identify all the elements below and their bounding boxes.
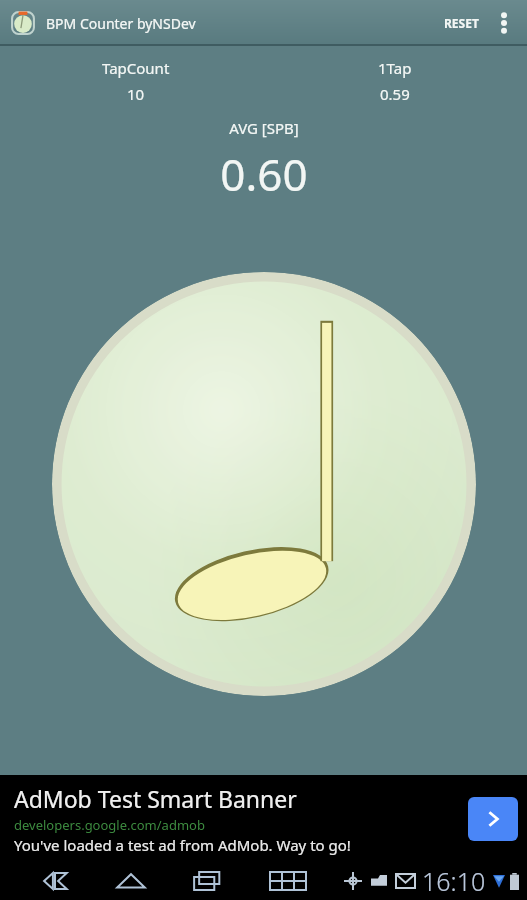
staticText: 1Tap (378, 58, 412, 78)
staticText: 10 (127, 84, 145, 104)
staticText: AVG [SPB] (229, 118, 299, 138)
staticText: 0.60 (220, 144, 308, 204)
staticText: You've loaded a test ad from AdMob. Way … (14, 835, 351, 855)
button[interactable]: AdMob Test Smart Banner (0, 775, 527, 862)
button[interactable]: Home (114, 864, 148, 898)
staticText: BPM Counter byNSDev (46, 14, 196, 33)
staticText: 16:10 (422, 864, 486, 898)
button[interactable]: Recent apps (190, 864, 224, 898)
button[interactable]: More options (489, 0, 519, 46)
button[interactable]: Apps (268, 862, 308, 900)
button[interactable]: Tap (52, 272, 476, 696)
staticText: developers.google.com/admob (14, 816, 205, 834)
button[interactable]: RESET (434, 3, 489, 43)
button[interactable]: Open ad (468, 797, 518, 841)
staticText: 0.59 (380, 84, 410, 104)
button[interactable]: Back (38, 864, 72, 898)
staticText: AdMob Test Smart Banner (14, 783, 297, 814)
staticText: TapCount (102, 58, 170, 78)
staticText: RESET (444, 15, 479, 31)
